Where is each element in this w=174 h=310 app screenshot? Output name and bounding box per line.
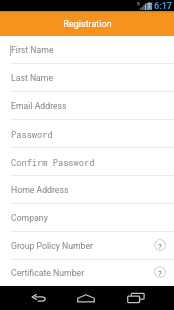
staticText: Group Policy Number	[11, 241, 94, 251]
staticText: 6:17	[154, 0, 173, 11]
staticText: Password	[11, 129, 53, 140]
button[interactable]: Email Address	[0, 92, 174, 120]
button[interactable]: First Name	[0, 36, 174, 64]
staticText: Confirm Password	[11, 157, 95, 168]
button[interactable]: Password	[0, 120, 174, 148]
staticText: Email Address	[11, 101, 67, 111]
staticText: Registration	[63, 19, 112, 30]
staticText: Company	[11, 213, 48, 223]
button[interactable]: Company	[0, 204, 174, 232]
button[interactable]: Help	[154, 239, 166, 251]
button[interactable]: Confirm Password	[0, 148, 174, 176]
staticText: Certificate Number	[11, 268, 85, 278]
staticText: Home Address	[11, 185, 69, 195]
staticText: Last Name	[11, 73, 54, 83]
button[interactable]: Recent apps	[121, 286, 151, 310]
button[interactable]: Home	[71, 286, 101, 310]
staticText: ?	[158, 268, 162, 277]
staticText: First Name	[11, 45, 54, 55]
button[interactable]: Back	[23, 286, 53, 310]
button[interactable]: Last Name	[0, 64, 174, 92]
staticText: ?	[158, 241, 162, 250]
button[interactable]: Help	[154, 266, 166, 278]
button[interactable]: Home Address	[0, 176, 174, 204]
button[interactable]: Group Policy Number	[0, 232, 174, 260]
button[interactable]: Certificate Number	[0, 260, 174, 286]
